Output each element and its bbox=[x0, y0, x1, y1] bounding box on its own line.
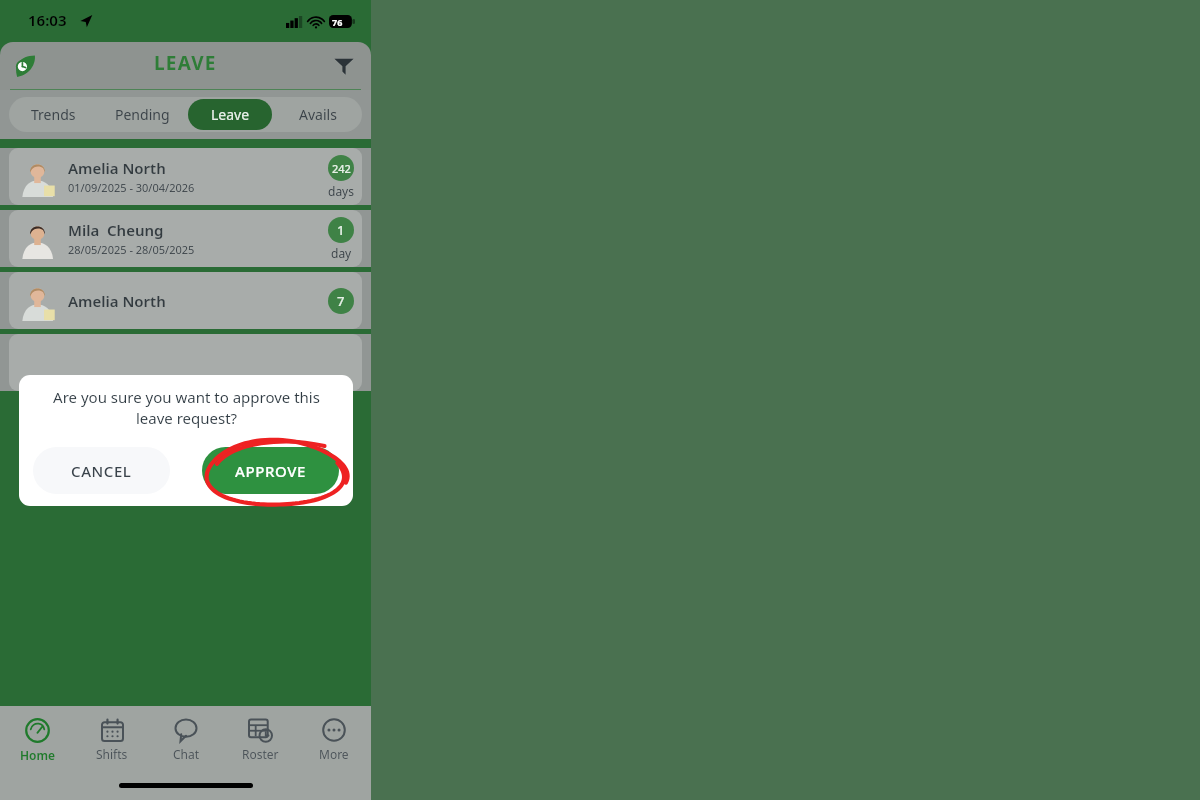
staticText: 28/05/2025 - 28/05/2025 bbox=[68, 242, 195, 257]
staticText: Roster bbox=[242, 746, 279, 762]
button[interactable]: Leave bbox=[188, 99, 272, 130]
button[interactable]: Logo bbox=[10, 51, 40, 81]
staticText: Amelia North bbox=[68, 291, 166, 311]
staticText: days bbox=[328, 183, 354, 199]
staticText: Are you sure you want to approve this le… bbox=[53, 387, 320, 429]
staticText: Chat bbox=[173, 746, 200, 762]
button[interactable]: Filter bbox=[331, 53, 357, 79]
button[interactable] bbox=[9, 334, 362, 391]
button[interactable]: CANCEL bbox=[33, 447, 170, 494]
button[interactable]: Trends bbox=[11, 99, 96, 130]
button[interactable]: Mila Cheung bbox=[9, 210, 362, 267]
button[interactable]: Chat bbox=[149, 706, 223, 774]
button[interactable]: Avails bbox=[276, 99, 360, 130]
staticText: Trends bbox=[31, 105, 76, 124]
button[interactable]: Shifts bbox=[75, 706, 149, 774]
button[interactable]: Amelia North bbox=[9, 148, 362, 205]
staticText: 7 bbox=[337, 292, 345, 310]
staticText: Shifts bbox=[96, 746, 128, 762]
staticText: LEAVE bbox=[154, 50, 217, 76]
staticText: Pending bbox=[115, 105, 170, 124]
button[interactable]: More bbox=[297, 706, 371, 774]
staticText: 242 bbox=[332, 161, 351, 176]
staticText: day bbox=[331, 245, 352, 261]
button[interactable]: APPROVE bbox=[202, 447, 339, 494]
button[interactable]: Amelia North bbox=[9, 272, 362, 329]
staticText: CANCEL bbox=[71, 461, 132, 481]
staticText: 16:03 bbox=[28, 10, 67, 30]
staticText: Amelia North bbox=[68, 158, 166, 178]
staticText: 01/09/2025 - 30/04/2026 bbox=[68, 180, 195, 195]
staticText: Home bbox=[20, 747, 56, 763]
staticText: 1 bbox=[337, 221, 345, 239]
staticText: Leave bbox=[211, 105, 250, 124]
staticText: Avails bbox=[299, 105, 337, 124]
button[interactable]: Pending bbox=[100, 99, 184, 130]
button[interactable]: Home bbox=[0, 706, 75, 774]
staticText: More bbox=[319, 746, 349, 762]
staticText: Mila Cheung bbox=[68, 220, 164, 240]
button[interactable]: Roster bbox=[223, 706, 297, 774]
staticText: 76 bbox=[332, 16, 343, 28]
staticText: APPROVE bbox=[235, 461, 306, 481]
